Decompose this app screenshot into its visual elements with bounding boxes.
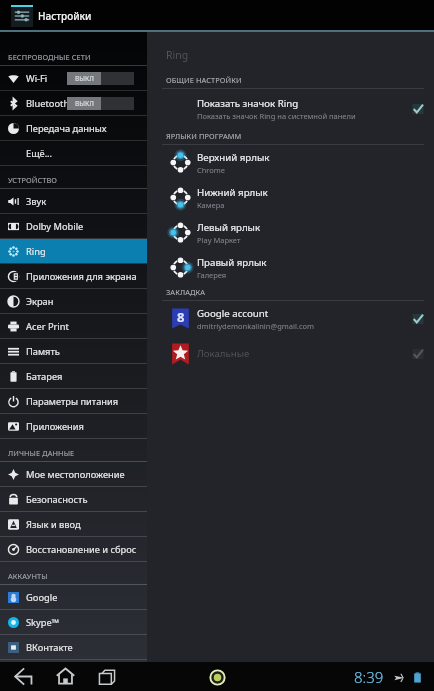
button[interactable]: Recents <box>92 662 122 691</box>
staticText: Язык и ввод <box>26 518 81 531</box>
staticText: Настройки <box>38 9 92 23</box>
staticText: Dolby Mobile <box>26 220 84 233</box>
button[interactable]: Нижний ярлык <box>147 180 434 215</box>
button[interactable]: Ring <box>205 665 229 689</box>
staticText: Приложения для экрана <box>26 270 137 283</box>
staticText: Передача данных <box>26 122 107 135</box>
staticText: Левый ярлык <box>197 221 261 234</box>
staticText: Нижний ярлык <box>197 186 268 199</box>
button[interactable]: Безопасность <box>0 487 147 511</box>
staticText: ЗАКЛАДКА <box>166 287 205 297</box>
button[interactable]: Правый ярлык <box>147 250 434 285</box>
staticText: Ring <box>26 245 46 258</box>
button[interactable]: Ещё... <box>0 141 147 165</box>
staticText: Правый ярлык <box>197 256 267 269</box>
staticText: Батарея <box>26 370 63 383</box>
staticText: Экран <box>26 295 54 308</box>
staticText: Верхний ярлык <box>197 151 270 164</box>
staticText: ВЫКЛ <box>75 74 94 83</box>
staticText: ВЫКЛ <box>75 99 94 108</box>
staticText: Галерея <box>197 270 227 280</box>
staticText: Приложения <box>26 420 84 433</box>
button[interactable]: Параметры питания <box>0 389 147 413</box>
staticText: ВКонтакте <box>26 641 73 654</box>
button[interactable]: ВКонтакте <box>0 635 147 659</box>
button[interactable]: Приложения для экрана <box>0 264 147 288</box>
button[interactable]: Ring <box>0 239 147 263</box>
staticText: Google account <box>197 307 269 320</box>
button[interactable]: Память <box>0 339 147 363</box>
button[interactable]: Локальные <box>147 336 434 371</box>
button[interactable]: Bluetooth <box>0 91 147 115</box>
staticText: Acer Print <box>26 320 69 333</box>
staticText: БЕСПРОВОДНЫЕ СЕТИ <box>8 52 91 62</box>
staticText: АККАУНТЫ <box>8 571 48 581</box>
staticText: dmitriydemonkalinin@gmail.com <box>197 321 315 331</box>
staticText: Play Маркет <box>197 235 241 245</box>
staticText: Камера <box>197 200 225 210</box>
staticText: Ещё... <box>26 147 53 160</box>
button[interactable]: Язык и ввод <box>0 512 147 536</box>
staticText: Параметры питания <box>26 395 119 408</box>
staticText: ЛИЧНЫЕ ДАННЫЕ <box>8 448 75 458</box>
staticText: Показать значок Ring на системной панели <box>197 111 356 121</box>
staticText: Google <box>26 591 58 604</box>
staticText: Локальные <box>197 347 250 360</box>
button[interactable]: Wi-Fi <box>0 66 147 90</box>
button[interactable]: Левый ярлык <box>147 215 434 250</box>
button[interactable]: Dolby Mobile <box>0 214 147 238</box>
button[interactable]: Google <box>0 585 147 609</box>
button[interactable]: Передача данных <box>0 116 147 140</box>
button[interactable]: Восстановление и сброс <box>0 537 147 561</box>
staticText: УСТРОЙСТВО <box>8 175 58 185</box>
staticText: Ring <box>166 48 189 62</box>
button[interactable]: 8 <box>147 301 434 336</box>
staticText: Wi-Fi <box>26 72 48 85</box>
button[interactable]: Приложения <box>0 414 147 438</box>
staticText: 8 <box>177 308 185 326</box>
button[interactable]: Мое местоположение <box>0 462 147 486</box>
button[interactable]: Home <box>50 662 80 691</box>
button[interactable]: Батарея <box>0 364 147 388</box>
staticText: Мое местоположение <box>26 468 125 481</box>
staticText: Звук <box>26 195 47 208</box>
button[interactable]: Acer Print <box>0 314 147 338</box>
button[interactable]: Skype™ <box>0 610 147 634</box>
staticText: Chrome <box>197 165 226 175</box>
staticText: Восстановление и сброс <box>26 543 137 556</box>
staticText: 8:39 <box>354 667 384 687</box>
button[interactable]: Верхний ярлык <box>147 145 434 180</box>
staticText: Bluetooth <box>26 97 67 110</box>
button[interactable]: Звук <box>0 189 147 213</box>
staticText: ЯРЛЫКИ ПРОГРАММ <box>166 131 242 141</box>
staticText: Память <box>26 345 60 358</box>
button[interactable]: Back <box>8 662 38 691</box>
button[interactable]: Экран <box>0 289 147 313</box>
button[interactable]: Показать значок Ring <box>147 89 434 128</box>
staticText: Skype™ <box>26 616 59 629</box>
staticText: ОБЩИЕ НАСТРОЙКИ <box>166 75 242 85</box>
staticText: Безопасность <box>26 493 88 506</box>
staticText: Показать значок Ring <box>197 97 299 110</box>
